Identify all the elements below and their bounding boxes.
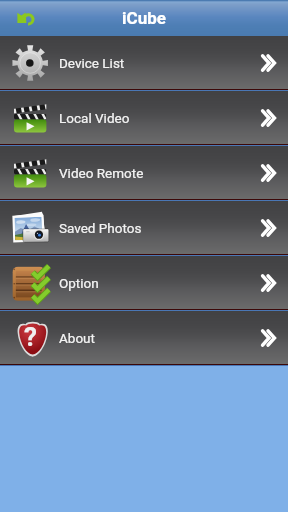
button[interactable]: Video Remote (0, 146, 288, 199)
staticText: Option (59, 275, 99, 291)
staticText: ? (24, 322, 37, 352)
staticText: About (59, 330, 95, 346)
staticText: Local Video (59, 110, 130, 126)
button[interactable]: ? (0, 311, 288, 364)
button[interactable]: Device List (0, 36, 288, 89)
button[interactable]: Back (10, 5, 38, 31)
button[interactable]: Option (0, 256, 288, 309)
staticText: Video Remote (59, 165, 144, 181)
button[interactable]: Local Video (0, 91, 288, 144)
staticText: iCube (122, 8, 166, 28)
staticText: Device List (59, 55, 125, 71)
button[interactable]: Saved Photos (0, 201, 288, 254)
staticText: Saved Photos (59, 220, 142, 236)
